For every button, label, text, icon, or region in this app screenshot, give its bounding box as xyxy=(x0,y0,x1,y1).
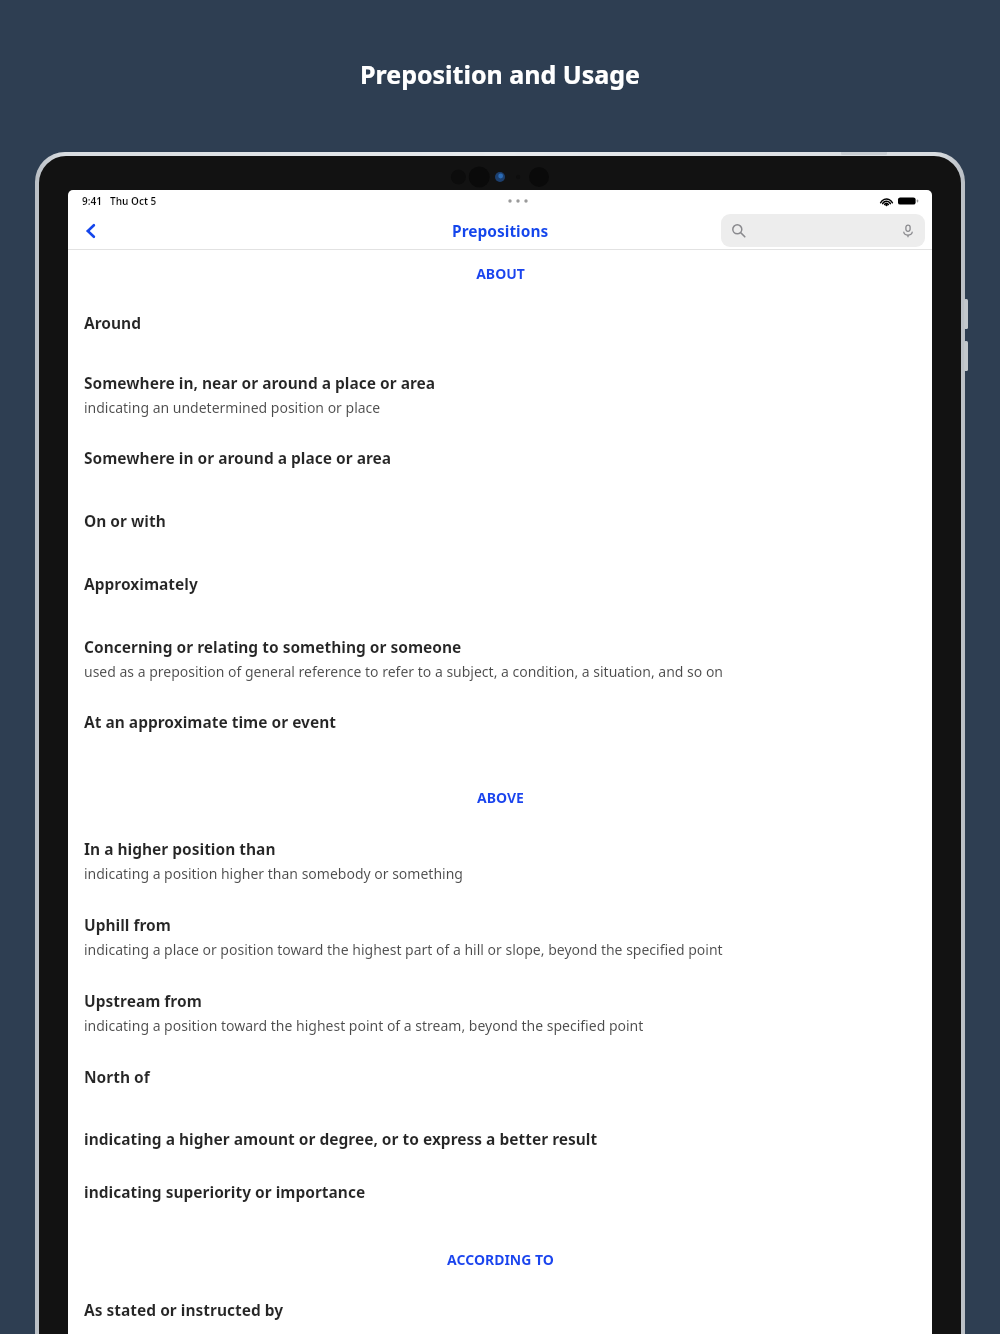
staticText: Thu Oct 5 xyxy=(110,194,157,208)
button[interactable]: North of xyxy=(68,1035,932,1087)
staticText: used as a preposition of general referen… xyxy=(84,662,724,681)
button[interactable]: Voice search xyxy=(721,214,925,247)
staticText: Preposition and Usage xyxy=(360,57,640,91)
staticText: Approximately xyxy=(84,573,198,594)
staticText: 9:41 xyxy=(82,194,102,208)
button[interactable]: Around xyxy=(68,283,932,333)
staticText: Upstream from xyxy=(84,990,202,1011)
staticText: ABOVE xyxy=(477,788,524,807)
button[interactable]: As stated or instructed by xyxy=(68,1269,932,1320)
button[interactable]: Uphill from xyxy=(68,883,932,959)
button[interactable]: Somewhere in, near or around a place or … xyxy=(68,333,932,417)
staticText: Prepositions xyxy=(452,220,549,241)
staticText: Around xyxy=(84,312,141,333)
button[interactable]: Approximately xyxy=(68,531,932,594)
staticText: indicating superiority or importance xyxy=(84,1181,366,1202)
button[interactable]: Upstream from xyxy=(68,959,932,1035)
staticText: Somewhere in or around a place or area xyxy=(84,447,392,468)
button[interactable]: Somewhere in or around a place or area xyxy=(68,417,932,468)
staticText: indicating a position higher than somebo… xyxy=(84,864,463,883)
staticText: indicating an undetermined position or p… xyxy=(84,398,381,417)
button[interactable]: indicating superiority or importance xyxy=(68,1149,932,1202)
staticText: At an approximate time or event xyxy=(84,711,337,732)
staticText: ABOUT xyxy=(476,264,525,283)
staticText: indicating a place or position toward th… xyxy=(84,940,723,959)
button[interactable]: Concerning or relating to something or s… xyxy=(68,594,932,681)
staticText: Uphill from xyxy=(84,914,171,935)
other: Volume down xyxy=(964,341,968,371)
button[interactable]: indicating a higher amount or degree, or… xyxy=(68,1087,932,1149)
button[interactable]: On or with xyxy=(68,468,932,531)
button[interactable]: Back xyxy=(74,214,108,248)
other: Voice search xyxy=(901,224,915,238)
staticText: indicating a position toward the highest… xyxy=(84,1016,644,1035)
staticText: Concerning or relating to something or s… xyxy=(84,636,462,657)
staticText: ACCORDING TO xyxy=(447,1250,554,1269)
staticText: North of xyxy=(84,1066,150,1087)
staticText: On or with xyxy=(84,510,166,531)
staticText: In a higher position than xyxy=(84,838,276,859)
staticText: As stated or instructed by xyxy=(84,1299,284,1320)
staticText: Somewhere in, near or around a place or … xyxy=(84,372,436,393)
staticText: indicating a higher amount or degree, or… xyxy=(84,1128,598,1149)
button[interactable]: In a higher position than xyxy=(68,807,932,883)
other: Volume up xyxy=(964,299,968,329)
button[interactable]: At an approximate time or event xyxy=(68,681,932,732)
